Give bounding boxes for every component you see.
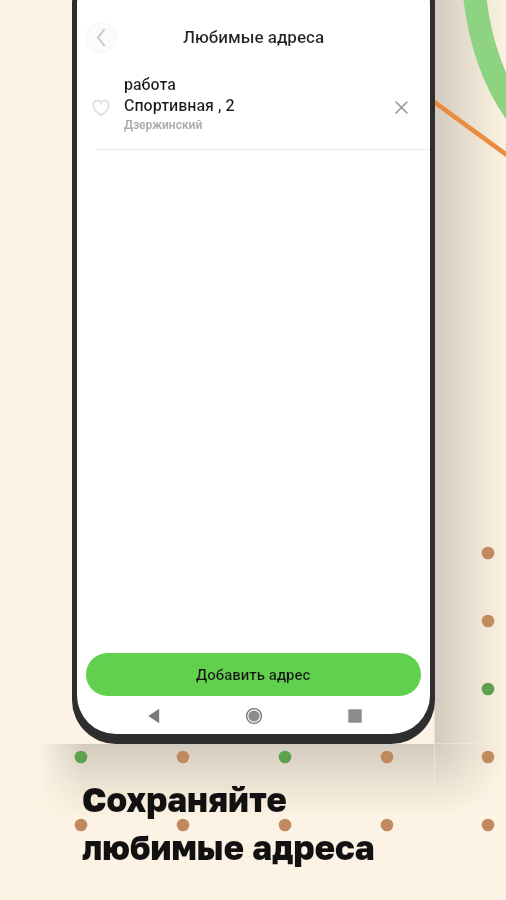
staticText: Добавить адрес [196, 666, 311, 684]
button[interactable]: Добавить адрес [86, 653, 421, 696]
staticText: Любимые адреса [183, 27, 325, 47]
button[interactable]: Назад [86, 22, 117, 53]
staticText: Дзержинский [124, 118, 203, 132]
button[interactable]: Home [241, 703, 267, 729]
button[interactable]: Удалить [374, 69, 430, 149]
button[interactable]: Back [141, 703, 167, 729]
staticText: Сохраняйте [82, 779, 287, 820]
staticText: работа [124, 75, 176, 94]
staticText: Спортивная , 2 [124, 96, 235, 115]
button[interactable]: Recents [342, 703, 368, 729]
staticText: любимые адреса [82, 827, 375, 868]
button[interactable]: работа [77, 69, 430, 149]
